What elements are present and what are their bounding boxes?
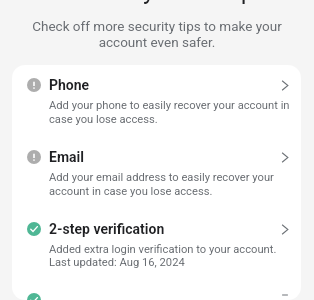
staticText: Added extra login verification to your a… [49,243,277,256]
staticText: Last updated: Aug 16, 2024 [49,256,185,269]
button[interactable]: Your devices [12,280,301,300]
button[interactable]: Phone [12,65,301,137]
staticText: Check off more security tips to make you… [18,18,296,51]
staticText: Security checkup [3,0,314,5]
staticText: 2-step verification [49,221,165,237]
staticText: Phone [49,77,90,93]
other: Open [281,80,289,91]
button[interactable]: 2-step verification [12,209,301,280]
other: Open [281,152,289,163]
staticText: Add your phone to easily recover your ac… [49,99,290,126]
staticText: Add your email address to easily recover… [49,171,290,198]
other: Open [281,224,289,235]
staticText: Email [49,149,84,165]
button[interactable]: Email [12,137,301,209]
